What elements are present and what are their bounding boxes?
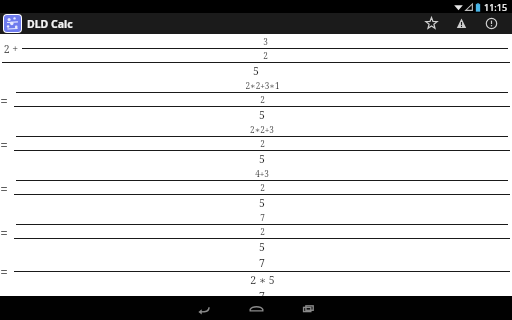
staticText: = bbox=[0, 224, 8, 242]
staticText: 5 bbox=[259, 108, 265, 122]
button[interactable]: Home bbox=[230, 296, 282, 320]
staticText: = bbox=[0, 136, 8, 154]
staticText: 2 bbox=[260, 94, 265, 105]
button[interactable]: Recent apps bbox=[282, 296, 334, 320]
staticText: = bbox=[0, 92, 8, 110]
staticText: 2 bbox=[260, 138, 265, 149]
staticText: 4+3 bbox=[255, 168, 269, 179]
staticText: 7 bbox=[259, 289, 265, 296]
staticText: 11:15 bbox=[484, 1, 508, 13]
staticText: = bbox=[0, 180, 8, 198]
staticText: 2 + bbox=[2, 42, 20, 56]
staticText: 3 bbox=[263, 36, 268, 47]
button[interactable]: 2 + bbox=[0, 34, 512, 296]
staticText: 2∗2+3 bbox=[250, 124, 274, 135]
button[interactable]: Info bbox=[476, 13, 506, 34]
staticText: 5 bbox=[259, 196, 265, 210]
staticText: 2 bbox=[260, 226, 265, 237]
button[interactable]: Favourite bbox=[416, 13, 446, 34]
staticText: 2 bbox=[260, 182, 265, 193]
staticText: 2∗2+3∗1 bbox=[245, 80, 280, 91]
staticText: 2 bbox=[263, 50, 268, 61]
staticText: 2 ∗ 5 bbox=[250, 273, 275, 287]
staticText: = bbox=[0, 263, 8, 281]
staticText: DLD Calc bbox=[27, 17, 73, 31]
button[interactable]: DLD Calc bbox=[3, 14, 73, 33]
staticText: 7 bbox=[260, 212, 265, 223]
staticText: 7 bbox=[259, 256, 265, 270]
staticText: 5 bbox=[253, 64, 259, 78]
button[interactable]: Warnings bbox=[446, 13, 476, 34]
staticText: 5 bbox=[259, 152, 265, 166]
button[interactable]: Back bbox=[178, 296, 230, 320]
staticText: 5 bbox=[259, 240, 265, 254]
